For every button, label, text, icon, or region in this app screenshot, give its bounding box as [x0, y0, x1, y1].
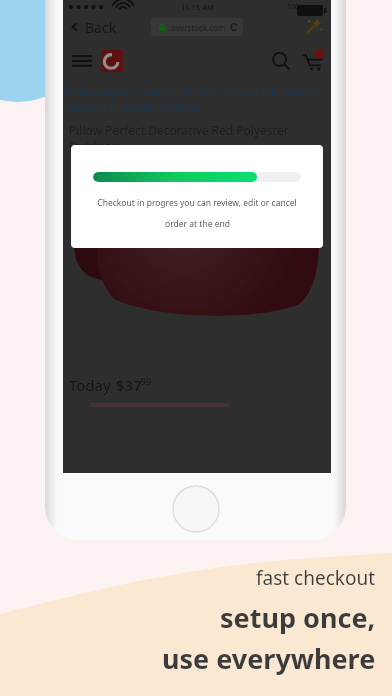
button[interactable]: Cart — [301, 50, 323, 72]
button[interactable]: Checkout in progres you can review, edit… — [71, 145, 323, 248]
button[interactable]: Home — [172, 485, 220, 533]
button[interactable]: Menu — [71, 50, 93, 72]
button[interactable]: Search — [271, 51, 291, 71]
staticText: use everywhere — [162, 640, 376, 677]
button[interactable]: Autofill wand — [303, 17, 323, 37]
staticText: 11.15 AM — [181, 2, 214, 12]
button[interactable]: Back — [69, 14, 117, 40]
staticText: 99 — [141, 375, 152, 387]
staticText: Back — [85, 18, 117, 37]
button[interactable]: overstock.com — [151, 18, 243, 36]
staticText: Checkout in progres you can review, edit… — [97, 197, 297, 209]
staticText: 1 / 14 — [287, 170, 303, 178]
staticText: Toss Pillows (Set of 2) — [69, 159, 188, 175]
staticText: setup once, — [220, 599, 376, 636]
staticText: fast checkout — [256, 565, 376, 591]
staticText: 100% — [287, 2, 305, 12]
button[interactable]: Overstock home — [101, 50, 123, 72]
staticText: order at the end — [165, 218, 230, 230]
staticText: Pillow Perfect Decorative Red Polyester … — [69, 122, 325, 154]
staticText: Home Goods / Garden & Patio / Patio Furn… — [65, 84, 317, 98]
staticText: Outdoor Cushions & Pillows — [65, 101, 202, 115]
staticText: $37 — [116, 375, 142, 395]
staticText: Today — [69, 375, 115, 395]
staticText: overstock.com — [171, 22, 226, 33]
